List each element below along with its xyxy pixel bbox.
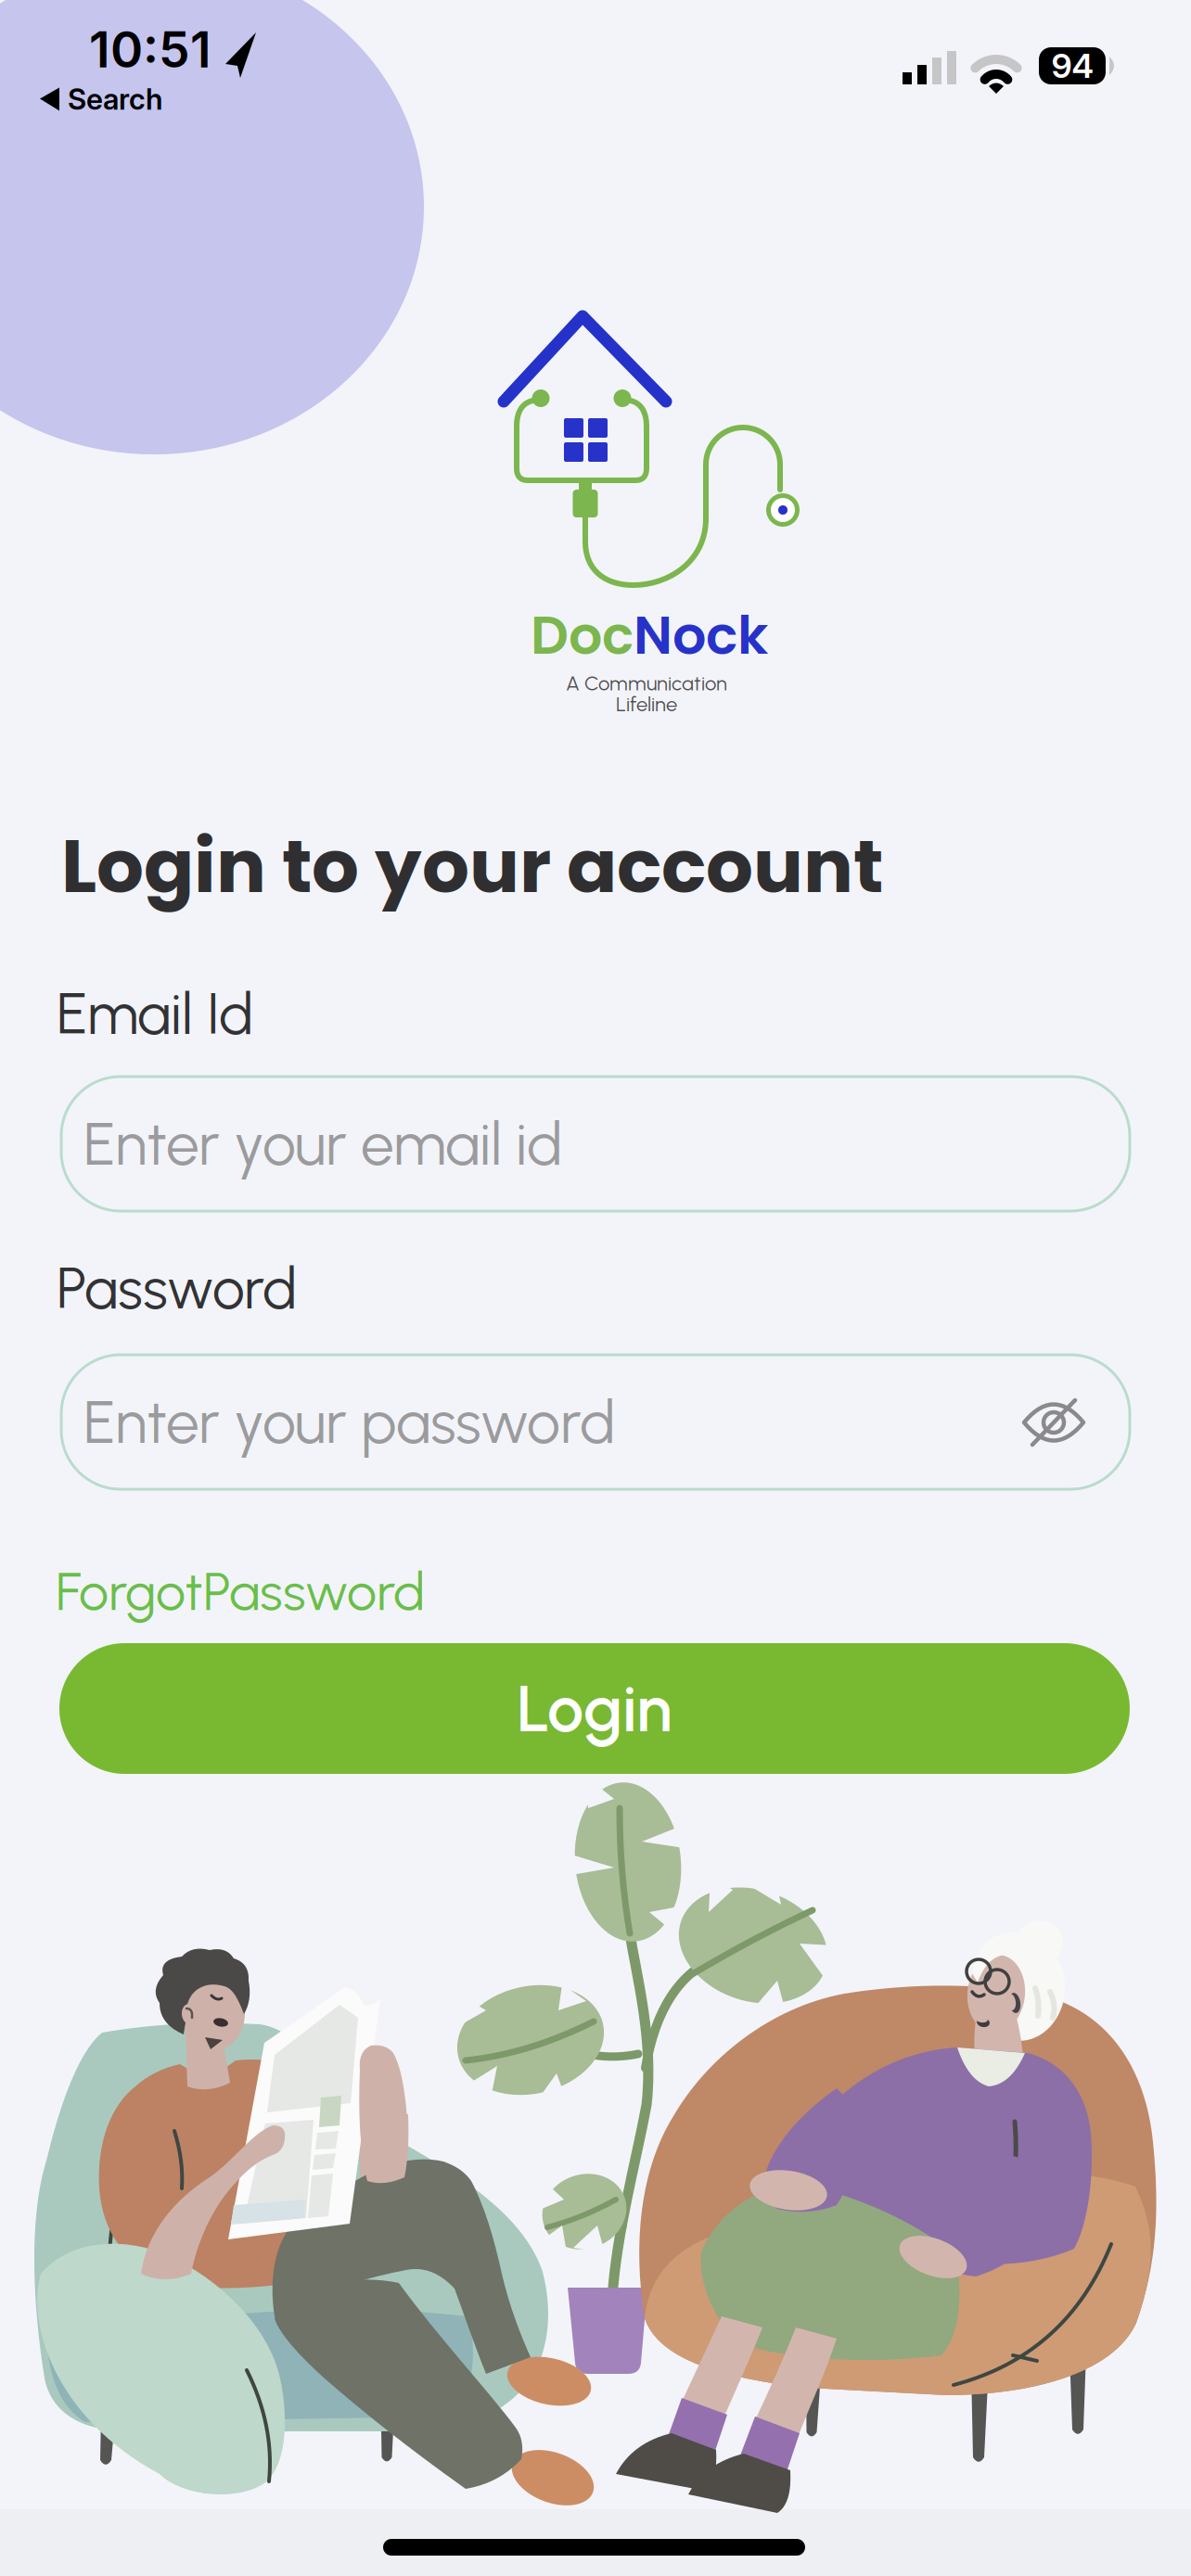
staticText: Login	[517, 1670, 672, 1747]
staticText: Search	[68, 82, 163, 117]
staticText: 94	[1051, 46, 1093, 86]
staticText: 10:51	[89, 19, 211, 79]
staticText: Enter your password	[83, 1386, 615, 1458]
staticText: Nock	[634, 598, 768, 672]
staticText: ForgotPassword	[56, 1560, 425, 1623]
staticText: Login to your account	[61, 814, 883, 918]
button[interactable]: Login	[59, 1643, 1130, 1774]
staticText: Doc	[531, 598, 634, 672]
staticText: Email Id	[57, 979, 253, 1048]
staticText: Lifeline	[616, 692, 677, 716]
button[interactable]: Enter your password	[61, 1355, 1130, 1489]
button[interactable]: Enter your email id	[61, 1077, 1130, 1211]
button[interactable]: ForgotPassword	[56, 1560, 425, 1623]
staticText: Enter your email id	[83, 1108, 562, 1179]
button[interactable]: Show password	[1023, 1396, 1084, 1449]
staticText: A Communication	[566, 671, 727, 695]
staticText: Password	[57, 1254, 297, 1323]
button[interactable]: Back to Search	[40, 82, 163, 117]
